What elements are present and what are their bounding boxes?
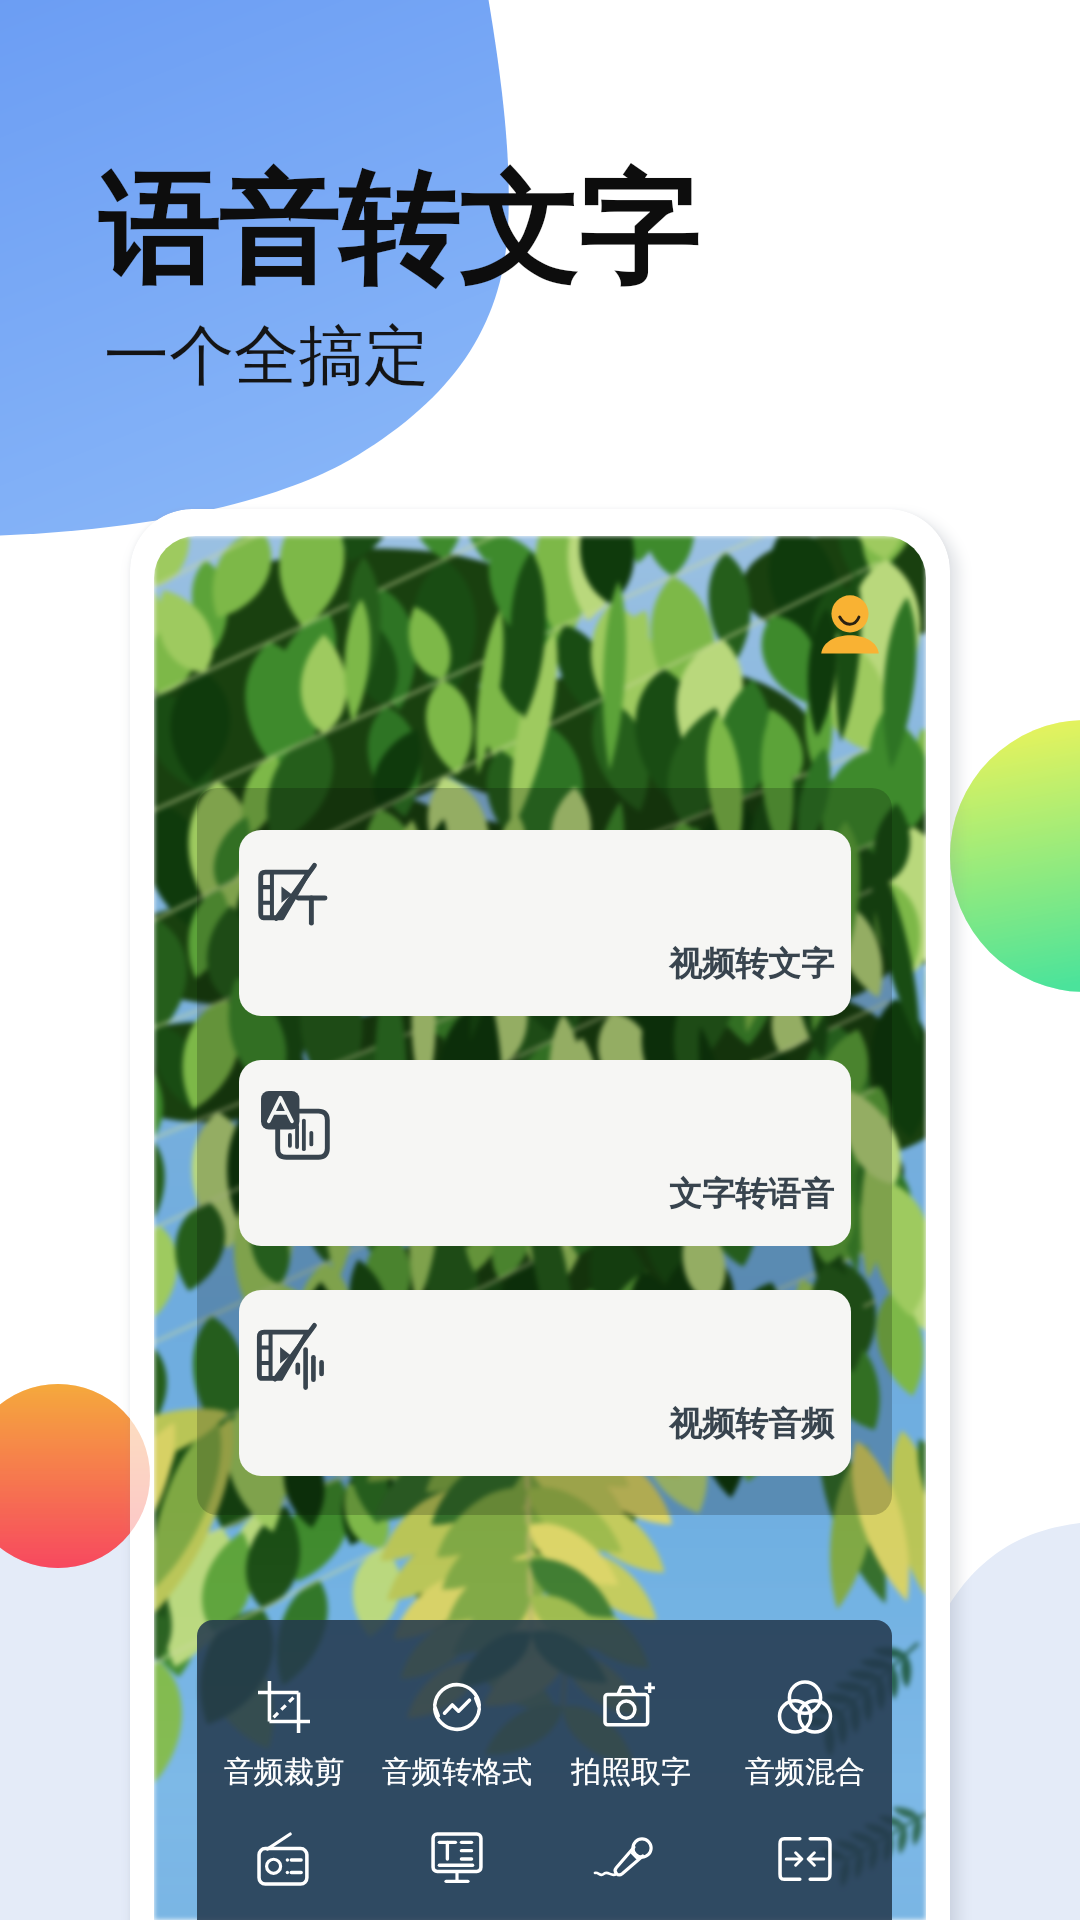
button[interactable]: 视频转音频 [239, 1290, 851, 1476]
staticText: 音频裁剪 [224, 1753, 344, 1791]
button[interactable]: Profile [818, 594, 882, 658]
button[interactable]: 录音机 [197, 1833, 370, 1885]
button[interactable]: 音频裁剪 [197, 1681, 370, 1791]
button[interactable]: 视频转文字 [239, 830, 851, 1016]
button[interactable]: 文字转语音 [239, 1060, 851, 1246]
staticText: 拍照取字 [571, 1753, 691, 1791]
button[interactable]: 录音 [544, 1833, 718, 1885]
staticText: 视频转文字 [669, 943, 834, 985]
button[interactable]: 拍照取字 [544, 1681, 718, 1791]
staticText: 音频转格式 [382, 1753, 532, 1791]
staticText: 视频转音频 [669, 1403, 834, 1445]
staticText: 音频混合 [745, 1753, 865, 1791]
button[interactable]: 文字编辑 [370, 1833, 544, 1885]
button[interactable]: 音频转格式 [370, 1681, 544, 1791]
staticText: 语音转文字 [98, 155, 698, 306]
button[interactable]: 音频合并 [718, 1833, 892, 1885]
button[interactable]: 音频混合 [718, 1681, 892, 1791]
staticText: 文字转语音 [669, 1173, 834, 1215]
staticText: 一个全搞定 [104, 315, 429, 397]
